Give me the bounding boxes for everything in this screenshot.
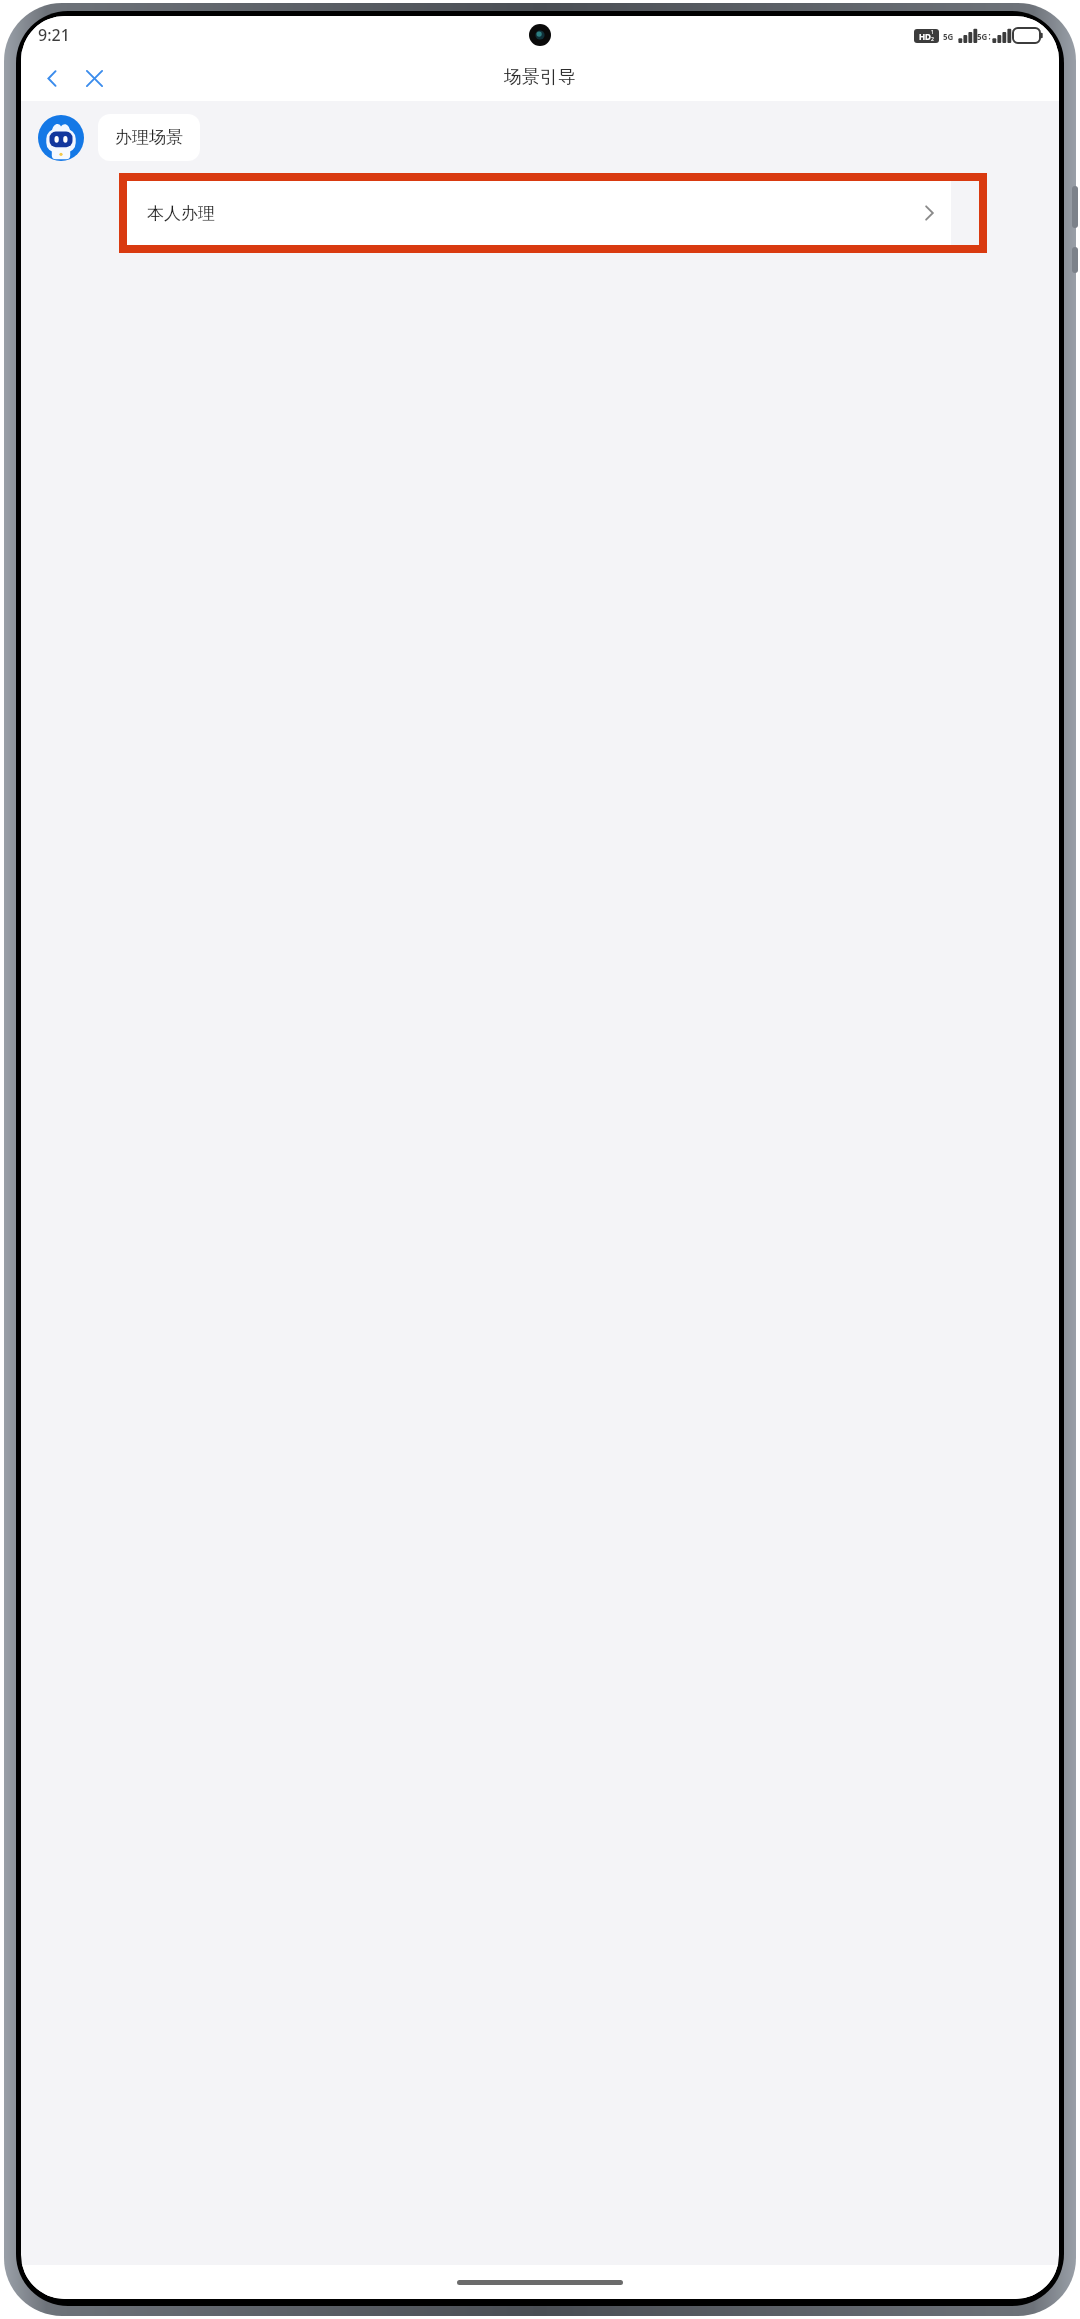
button[interactable]: Back xyxy=(33,59,71,97)
staticText: HD xyxy=(919,31,931,42)
staticText: 场景引导 xyxy=(504,66,576,89)
staticText: 5G xyxy=(943,31,954,42)
staticText: 2 xyxy=(931,36,934,43)
staticText: 9:21 xyxy=(38,24,70,46)
staticText: 本人办理 xyxy=(147,203,215,224)
button[interactable]: Close xyxy=(75,59,113,97)
staticText: 1 xyxy=(931,29,934,36)
staticText: 5G xyxy=(977,31,988,42)
button[interactable]: 本人办理 xyxy=(127,181,951,245)
staticText: 办理场景 xyxy=(115,127,183,148)
button[interactable]: 办理场景 xyxy=(98,114,200,161)
